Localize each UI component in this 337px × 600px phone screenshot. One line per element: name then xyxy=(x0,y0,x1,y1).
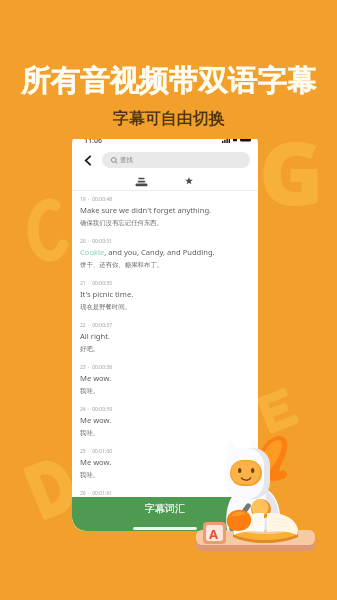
staticText: 确保我们没有忘记任何东西。 xyxy=(80,219,164,227)
staticText: A xyxy=(209,525,218,543)
staticText: It's picnic time. xyxy=(80,289,134,299)
button[interactable]: Back xyxy=(79,151,97,169)
staticText: 所有音视频带双语字幕 xyxy=(0,63,337,100)
staticText: 25 · 00:01:00 xyxy=(80,448,113,455)
staticText: 22 · 00:00:57 xyxy=(80,322,113,329)
staticText: Me wow. xyxy=(80,415,112,425)
button[interactable]: Subtitles xyxy=(125,172,158,190)
staticText: 24 · 00:00:59 xyxy=(80,406,113,413)
staticText: 好吧。 xyxy=(80,345,100,353)
staticText: Make sure we didn't forget anything. xyxy=(80,205,212,215)
staticText: 11:06 xyxy=(84,136,102,146)
staticText: 字幕可自由切换 xyxy=(0,109,337,129)
staticText: 19 · 00:00:48 xyxy=(80,196,113,203)
staticText: 饼干、还有你、糖果和布丁。 xyxy=(80,261,164,269)
button[interactable]: Favorites xyxy=(172,172,205,190)
button[interactable]: 查找 xyxy=(102,152,250,168)
staticText: 查找 xyxy=(120,156,133,164)
button[interactable]: 19 · 00:00:48 xyxy=(72,191,258,233)
button[interactable]: 25 · 00:01:00 xyxy=(72,443,258,485)
staticText: 我哇。 xyxy=(80,429,100,437)
staticText: All right. xyxy=(80,331,110,341)
staticText: Cookie, and you, Candy, and Pudding. xyxy=(80,247,215,257)
button[interactable]: 20 · 00:00:51 xyxy=(72,233,258,275)
staticText: 现在是野餐时间。 xyxy=(80,303,132,311)
staticText: 我哇。 xyxy=(80,387,100,395)
button[interactable]: 21 · 00:00:55 xyxy=(72,275,258,317)
button[interactable]: 24 · 00:00:59 xyxy=(72,401,258,443)
button[interactable]: 字幕词汇 xyxy=(72,497,258,531)
staticText: 26 · 00:01:01 xyxy=(80,490,113,497)
staticText: Me wow. xyxy=(80,457,112,467)
button[interactable]: 23 · 00:00:58 xyxy=(72,359,258,401)
staticText: 20 · 00:00:51 xyxy=(80,238,113,245)
staticText: G xyxy=(259,112,324,230)
staticText: 23 · 00:00:58 xyxy=(80,364,113,371)
staticText: 我哇。 xyxy=(80,471,100,479)
button[interactable]: 22 · 00:00:57 xyxy=(72,317,258,359)
staticText: 字幕词汇 xyxy=(145,502,185,515)
staticText: Me wow. xyxy=(80,373,112,383)
button[interactable]: 26 · 00:01:01 xyxy=(72,485,258,527)
staticText: 21 · 00:00:55 xyxy=(80,280,113,287)
